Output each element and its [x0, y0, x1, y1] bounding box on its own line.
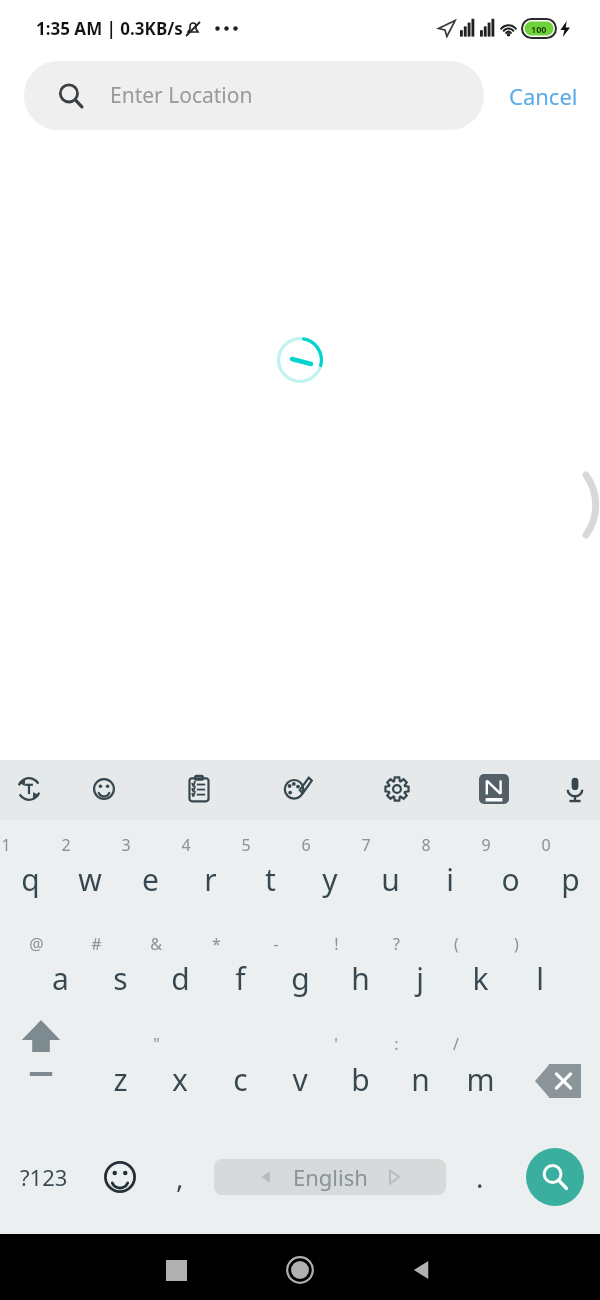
staticText: 100	[531, 23, 547, 35]
staticText: ?	[393, 933, 400, 955]
staticText: u	[381, 859, 400, 900]
button[interactable]: Recents	[146, 1240, 206, 1300]
button[interactable]: h	[330, 944, 390, 1012]
staticText: :	[394, 1033, 399, 1055]
button[interactable]: w	[60, 845, 120, 913]
button[interactable]: s	[90, 944, 150, 1012]
button[interactable]: k	[450, 944, 510, 1012]
button[interactable]: x	[150, 1045, 210, 1113]
staticText: 3	[121, 834, 131, 856]
button[interactable]: ?123	[6, 1143, 82, 1211]
staticText: !	[334, 933, 339, 955]
staticText: .	[476, 1158, 484, 1196]
button[interactable]	[466, 761, 522, 817]
staticText: r	[204, 859, 217, 900]
button[interactable]: q	[0, 845, 60, 913]
staticText: Cancel	[509, 81, 578, 111]
button[interactable]: Emoji	[86, 1143, 154, 1211]
staticText: #	[91, 933, 102, 955]
staticText: 4	[181, 834, 191, 856]
staticText: s	[113, 958, 128, 999]
button[interactable]: j	[390, 944, 450, 1012]
staticText: English	[293, 1162, 368, 1192]
staticText: ,	[176, 1158, 184, 1196]
button[interactable]: ,	[152, 1143, 208, 1211]
button[interactable]: Home	[270, 1240, 330, 1300]
staticText: o	[501, 859, 520, 900]
staticText: c	[233, 1059, 248, 1100]
button[interactable]: u	[360, 845, 420, 913]
button[interactable]: Backspace	[525, 1053, 591, 1109]
button[interactable]: d	[150, 944, 210, 1012]
button[interactable]: v	[270, 1045, 330, 1113]
staticText: q	[21, 859, 40, 900]
staticText: g	[291, 958, 310, 999]
staticText: 5	[241, 834, 251, 856]
staticText: h	[351, 958, 370, 999]
staticText: y	[322, 859, 338, 900]
staticText: x	[172, 1059, 188, 1100]
button[interactable]	[171, 761, 227, 817]
staticText: &	[150, 933, 162, 955]
button[interactable]: c	[210, 1045, 270, 1113]
staticText: *	[212, 933, 221, 955]
staticText: 8	[421, 834, 431, 856]
button[interactable]: Back	[392, 1240, 452, 1300]
button[interactable]: t	[240, 845, 300, 913]
button[interactable]: Enter Location	[24, 61, 484, 130]
staticText: n	[411, 1059, 430, 1100]
staticText: k	[472, 958, 489, 999]
button[interactable]: f	[210, 944, 270, 1012]
button[interactable]: .	[452, 1143, 508, 1211]
button[interactable]: Shift	[8, 1016, 74, 1102]
button[interactable]	[76, 761, 132, 817]
staticText: i	[446, 859, 454, 900]
button[interactable]: g	[270, 944, 330, 1012]
staticText: m	[466, 1059, 495, 1100]
staticText: 7	[361, 834, 371, 856]
staticText: -	[273, 933, 279, 955]
button[interactable]: Space, English	[214, 1159, 446, 1195]
staticText: z	[113, 1059, 128, 1100]
button[interactable]: e	[120, 845, 180, 913]
button[interactable]	[369, 761, 425, 817]
button[interactable]: i	[420, 845, 480, 913]
button[interactable]: y	[300, 845, 360, 913]
staticText: v	[292, 1059, 308, 1100]
staticText: p	[561, 859, 580, 900]
staticText: @	[29, 933, 44, 955]
staticText: Enter Location	[110, 81, 253, 110]
staticText: '	[334, 1033, 338, 1055]
button[interactable]: l	[510, 944, 570, 1012]
button[interactable]: n	[390, 1045, 450, 1113]
staticText: d	[171, 958, 190, 999]
button[interactable]: r	[180, 845, 240, 913]
button[interactable]: b	[330, 1045, 390, 1113]
staticText: 6	[301, 834, 311, 856]
staticText: (	[454, 933, 459, 955]
button[interactable]	[270, 761, 326, 817]
staticText: )	[514, 933, 519, 955]
staticText: 1:35 AM | 0.3KB/s	[36, 17, 183, 40]
staticText: f	[235, 958, 246, 999]
button[interactable]: p	[540, 845, 600, 913]
button[interactable]: z	[90, 1045, 150, 1113]
staticText: 2	[61, 834, 71, 856]
staticText: e	[142, 859, 159, 900]
staticText: ?123	[20, 1162, 68, 1192]
staticText: 0	[541, 834, 551, 856]
staticText: w	[78, 859, 102, 900]
button[interactable]: Search	[526, 1148, 584, 1206]
button[interactable]: o	[480, 845, 540, 913]
staticText: b	[351, 1059, 370, 1100]
button[interactable]: m	[450, 1045, 510, 1113]
button[interactable]: Cancel	[499, 73, 588, 119]
button[interactable]	[1, 761, 57, 817]
button[interactable]: a	[30, 944, 90, 1012]
button[interactable]	[547, 761, 600, 817]
staticText: /	[453, 1033, 459, 1055]
staticText: l	[536, 958, 544, 999]
staticText: 1	[1, 834, 11, 856]
staticText: "	[153, 1033, 160, 1055]
staticText: a	[52, 958, 69, 999]
